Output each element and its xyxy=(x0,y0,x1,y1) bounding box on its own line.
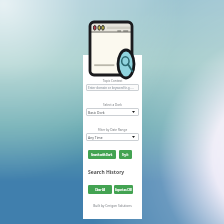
staticText: Select a Dork xyxy=(86,103,139,107)
staticText: Export as CSV xyxy=(115,188,132,192)
staticText: Try it xyxy=(122,153,129,157)
button[interactable]: Search with Dork xyxy=(88,150,116,159)
button[interactable]: Try it xyxy=(119,150,132,159)
button[interactable]: Export as CSV xyxy=(114,185,133,194)
button[interactable]: Enter domain or keyword (e.g. ... xyxy=(86,84,139,91)
staticText: Basic Dork xyxy=(88,110,105,114)
button[interactable]: Basic Dork xyxy=(86,108,139,116)
button[interactable]: Search xyxy=(118,50,134,78)
staticText: Topic Context xyxy=(86,79,139,83)
staticText: Search with Dork xyxy=(91,153,113,157)
staticText: Any Time xyxy=(88,135,103,139)
button[interactable]: Clear All xyxy=(88,185,112,194)
staticText: Built by Cerigon Solutions xyxy=(86,204,139,208)
staticText: Clear All xyxy=(95,188,106,192)
button[interactable]: Any Time xyxy=(86,133,139,141)
staticText: Enter domain or keyword (e.g. ... xyxy=(88,86,134,90)
staticText: Filter by Date Range xyxy=(86,128,139,132)
staticText: Search History xyxy=(88,169,139,176)
